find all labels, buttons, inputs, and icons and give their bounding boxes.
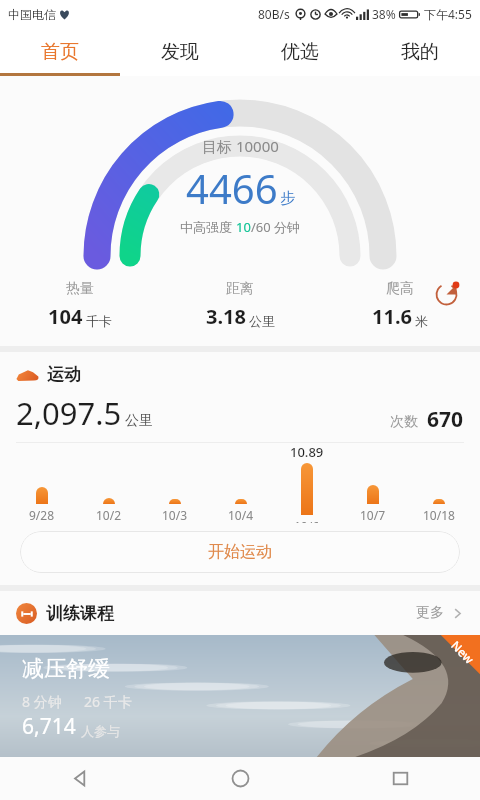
staticText: 10/4 (228, 507, 254, 523)
staticText: 80B/s (258, 6, 290, 22)
staticText: 下午4:55 (424, 6, 472, 22)
staticText: 8 分钟 (22, 692, 62, 711)
staticText: New (448, 637, 478, 667)
button[interactable]: 我的 (360, 28, 480, 76)
staticText: 更多 (416, 604, 444, 622)
staticText: 次数 (390, 413, 418, 431)
button[interactable]: 爬高 (320, 280, 480, 330)
button[interactable]: 减压舒缓 (0, 635, 480, 757)
staticText: 千卡 (86, 313, 112, 329)
staticText: 10/6 (294, 518, 320, 523)
button[interactable]: 首页 (0, 28, 120, 76)
staticText: 首页 (41, 40, 79, 64)
staticText: 10/3 (162, 507, 188, 523)
button[interactable]: 最近任务 (320, 757, 480, 800)
button[interactable]: 更多 (416, 604, 464, 622)
staticText: 9/28 (29, 507, 55, 523)
staticText: 10 (236, 218, 251, 236)
staticText: 670 (427, 405, 464, 434)
staticText: 10/18 (423, 507, 455, 523)
staticText: 11.6 (372, 303, 412, 330)
staticText: 公里 (249, 313, 275, 329)
staticText: 中高强度 (180, 218, 236, 236)
button[interactable]: 运动 (16, 364, 464, 385)
button[interactable]: 优选 (240, 28, 360, 76)
staticText: 爬高 (386, 280, 414, 298)
staticText: 运动 (47, 364, 81, 385)
staticText: 米 (415, 313, 428, 329)
button[interactable]: 距离 (160, 280, 320, 330)
staticText: 26 千卡 (84, 692, 132, 711)
staticText: 6,714 (22, 712, 76, 741)
button[interactable]: 主页 (160, 757, 320, 800)
staticText: 开始运动 (208, 542, 272, 562)
staticText: 人参与 (81, 723, 120, 739)
staticText: 10/2 (96, 507, 122, 523)
button[interactable]: 热量 (0, 280, 160, 330)
button[interactable]: 返回 (0, 757, 160, 800)
staticText: 中国电信 (8, 7, 56, 22)
staticText: 发现 (161, 40, 199, 64)
button[interactable]: 发现 (120, 28, 240, 76)
staticText: /60 分钟 (251, 218, 301, 236)
staticText: 目标 10000 (202, 136, 279, 156)
staticText: 2,097.5 (16, 392, 122, 434)
staticText: 减压舒缓 (22, 655, 110, 683)
staticText: 优选 (281, 40, 319, 64)
staticText: 10/7 (360, 507, 386, 523)
staticText: 3.18 (206, 303, 246, 330)
staticText: 4466 (186, 161, 278, 215)
staticText: 公里 (125, 412, 153, 430)
staticText: 热量 (66, 280, 94, 298)
staticText: 训练课程 (46, 603, 114, 624)
staticText: 步 (280, 189, 295, 208)
staticText: 10.89 (290, 443, 324, 461)
staticText: 38% (372, 6, 396, 22)
button[interactable]: 运动记录 (428, 276, 464, 312)
button[interactable]: 开始运动 (20, 531, 460, 573)
staticText: 我的 (401, 40, 439, 64)
staticText: 距离 (226, 280, 254, 298)
staticText: 104 (48, 303, 83, 330)
